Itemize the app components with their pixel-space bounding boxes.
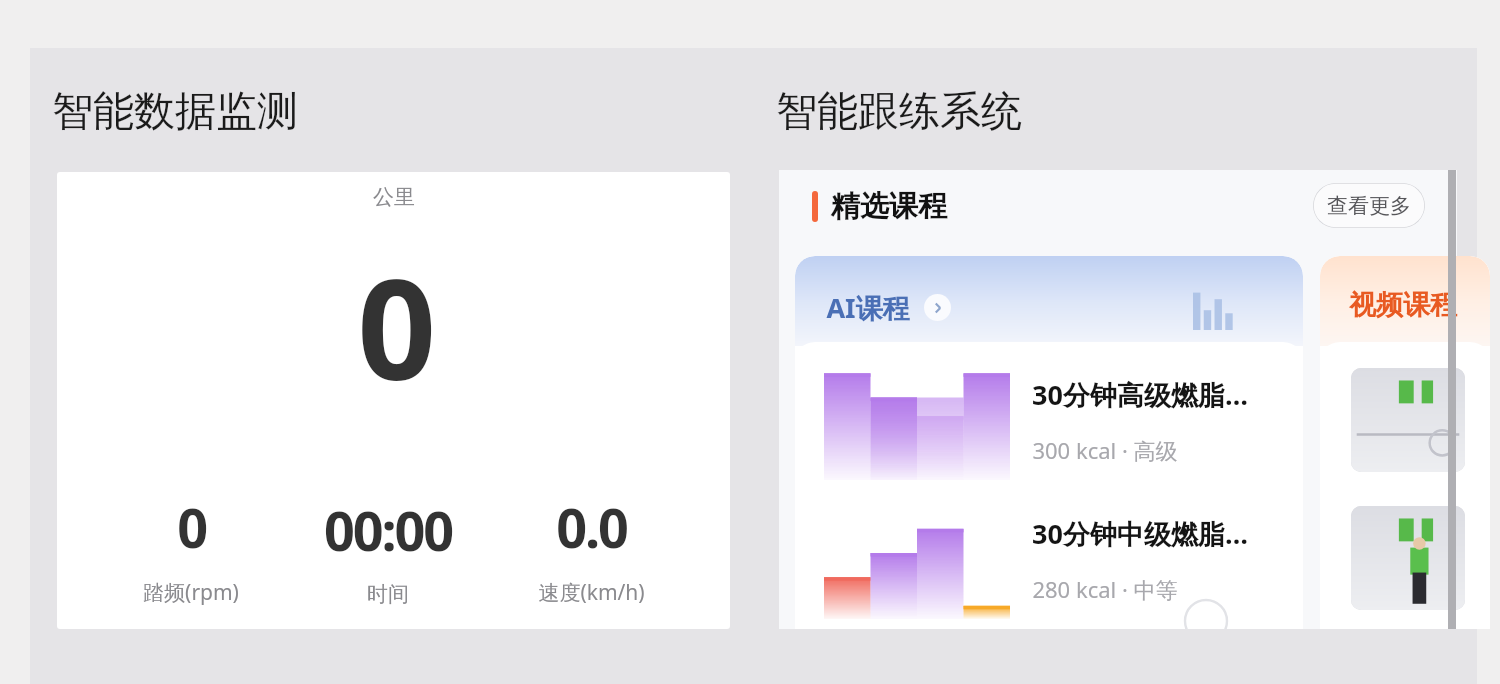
staticText: 查看更多 (1327, 193, 1411, 219)
button[interactable]: 精选课程 (812, 188, 947, 225)
staticText: AI课程 (826, 289, 910, 326)
staticText: 智能数据监测 (52, 86, 298, 138)
staticText: 视频课程 (1349, 288, 1457, 322)
staticText: 0.0 (556, 490, 627, 564)
button[interactable]: 查看更多 (1313, 183, 1425, 228)
button[interactable]: 30分钟中级燃脂… (824, 505, 1274, 625)
staticText: 公里 (373, 184, 415, 210)
staticText: 300 kcal · 高级 (1032, 435, 1178, 465)
button[interactable]: 30分钟高级燃脂… (824, 366, 1274, 486)
button[interactable]: AI课程 (795, 256, 1303, 629)
staticText: 0 (177, 490, 206, 564)
staticText: 精选课程 (831, 188, 947, 225)
button[interactable]: 公里 (57, 172, 730, 629)
staticText: 踏频(rpm) (143, 578, 239, 607)
staticText: 280 kcal · 中等 (1032, 574, 1178, 604)
staticText: 30分钟中级燃脂… (1032, 515, 1248, 552)
staticText: 智能跟练系统 (776, 86, 1022, 138)
staticText: 30分钟高级燃脂… (1032, 376, 1248, 413)
staticText: 00:00 (324, 493, 452, 567)
staticText: 0 (357, 232, 431, 420)
button[interactable]: 视频课程 (1320, 256, 1490, 629)
staticText: 速度(km/h) (538, 578, 645, 607)
staticText: 时间 (367, 581, 409, 607)
